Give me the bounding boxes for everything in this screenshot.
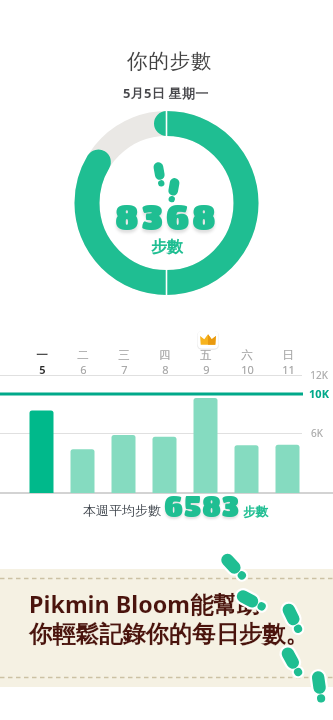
staticText: 6 [80, 362, 87, 377]
staticText: 五 [200, 348, 212, 362]
staticText: 日 [282, 348, 294, 362]
staticText: 12K [310, 368, 328, 382]
staticText: 7 [121, 362, 128, 377]
staticText: 8 [162, 362, 169, 377]
staticText: 8368 [115, 195, 219, 236]
staticText: 三 [118, 348, 130, 362]
staticText: Pikmin Bloom能幫助 你輕鬆記錄你的每日步數。 [29, 588, 309, 649]
staticText: 6K [311, 426, 323, 440]
staticText: 10K [309, 386, 329, 401]
staticText: 二 [77, 348, 89, 362]
staticText: 你的步數 [127, 48, 213, 74]
staticText: 六 [241, 348, 253, 362]
staticText: 10 [241, 362, 254, 377]
staticText: 步數 [151, 237, 183, 257]
staticText: 步數 [243, 504, 268, 520]
staticText: 四 [159, 348, 171, 362]
staticText: 一 [36, 348, 48, 362]
staticText: 本週平均步數 [83, 502, 161, 518]
staticText: 5 [39, 362, 46, 377]
staticText: 11 [282, 362, 295, 377]
button[interactable] [0, 569, 333, 687]
staticText: 6583 [164, 489, 240, 522]
staticText: 9 [203, 362, 210, 377]
staticText: 5月5日 星期一 [123, 84, 209, 102]
